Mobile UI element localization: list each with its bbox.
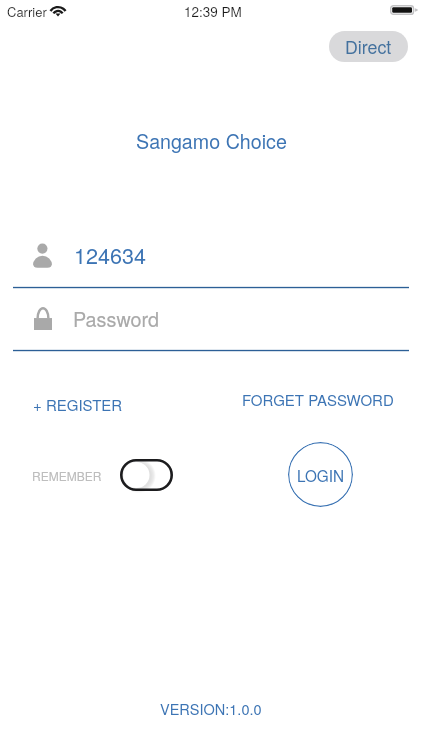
- staticText: LOGIN: [297, 464, 344, 486]
- staticText: Sangamo Choice: [136, 126, 287, 154]
- button[interactable]: + REGISTER: [25, 386, 131, 423]
- other: Battery: [390, 5, 417, 15]
- staticText: Password: [73, 304, 160, 332]
- other: Password: [34, 307, 52, 330]
- staticText: VERSION:1.0.0: [160, 698, 262, 719]
- staticText: REMEMBER: [32, 467, 102, 484]
- staticText: 124634: [74, 239, 147, 270]
- button[interactable]: Remember me: [32, 459, 173, 491]
- button[interactable]: FORGET PASSWORD: [234, 381, 402, 418]
- other: Wifi: [50, 5, 66, 16]
- staticText: FORGET PASSWORD: [242, 389, 394, 410]
- staticText: 12:39 PM: [184, 2, 242, 21]
- staticText: Carrier: [7, 2, 47, 21]
- button[interactable]: Direct: [329, 31, 408, 62]
- button[interactable]: LOGIN: [288, 442, 353, 507]
- other: User name: [33, 242, 52, 269]
- staticText: + REGISTER: [33, 394, 123, 415]
- staticText: Direct: [345, 34, 392, 59]
